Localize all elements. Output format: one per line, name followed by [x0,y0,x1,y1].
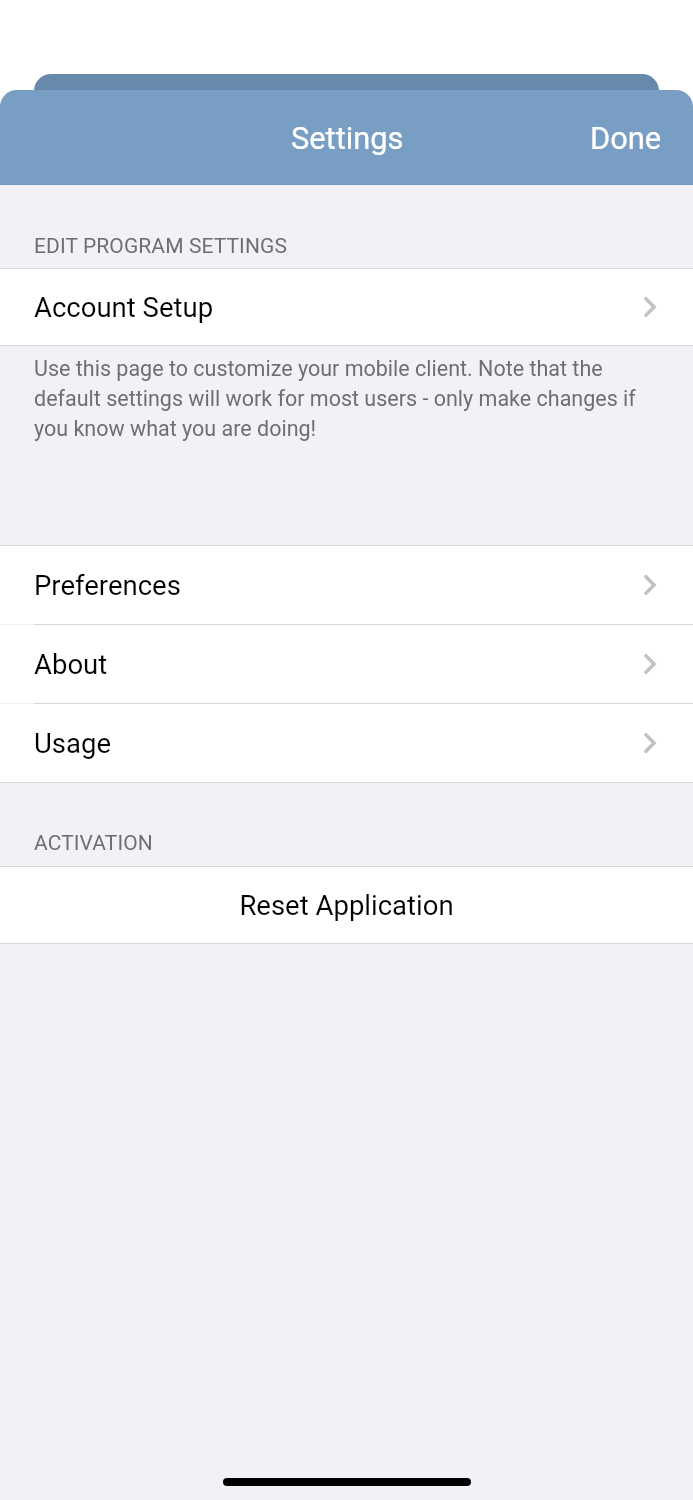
button[interactable]: Done [560,106,693,170]
staticText: About [34,648,108,680]
staticText: ACTIVATION [34,831,153,856]
staticText: Use this page to customize your mobile c… [34,356,663,441]
staticText: Preferences [34,569,181,601]
staticText: Settings [291,120,404,156]
staticText: Reset Application [239,889,454,921]
button[interactable]: About [0,625,693,703]
staticText: Usage [34,727,112,759]
button[interactable]: Account Setup [0,269,693,345]
staticText: Done [590,120,662,156]
staticText: EDIT PROGRAM SETTINGS [34,234,287,259]
button[interactable]: Usage [0,704,693,782]
staticText: Account Setup [34,291,214,323]
button[interactable]: Reset Application [0,867,693,943]
button[interactable]: Preferences [0,546,693,624]
